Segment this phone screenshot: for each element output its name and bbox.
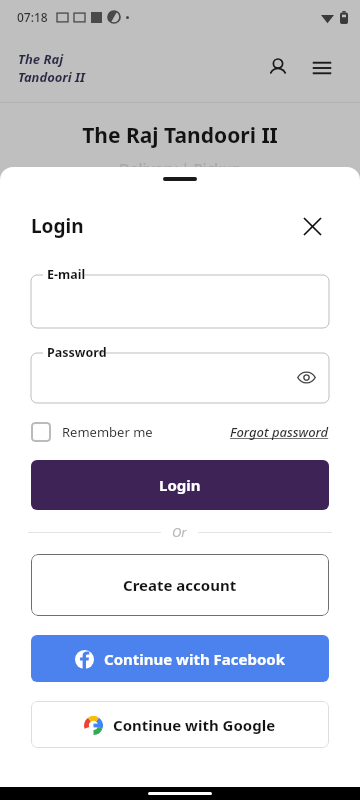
button[interactable]: Continue with Facebook — [31, 635, 329, 682]
staticText: Tandoori II — [18, 68, 86, 86]
button[interactable]: Remember me — [31, 422, 153, 442]
staticText: Login — [31, 213, 84, 239]
staticText: Create account — [123, 575, 237, 595]
staticText: Or — [172, 523, 187, 541]
staticText: Delivery | Pickup — [0, 158, 360, 178]
button[interactable]: Create account — [31, 554, 329, 616]
button[interactable]: Menu — [302, 48, 342, 88]
button[interactable]: Account — [258, 48, 298, 88]
staticText: Password — [47, 344, 107, 361]
staticText: 07:18 — [17, 9, 48, 25]
staticText: The Raj Tandoori II — [0, 121, 360, 150]
staticText: Remember me — [62, 423, 153, 441]
staticText: The Raj — [18, 50, 64, 68]
button[interactable]: Show password — [293, 364, 319, 390]
button[interactable]: Close — [295, 209, 329, 243]
staticText: Continue with Google — [113, 715, 276, 735]
staticText: Continue with Facebook — [104, 649, 286, 669]
staticText: Forgot password — [230, 423, 329, 441]
staticText: E-mail — [47, 266, 86, 283]
button[interactable]: Login — [31, 460, 329, 510]
staticText: Login — [159, 475, 201, 495]
button[interactable]: Forgot password — [230, 423, 329, 441]
button[interactable]: Continue with Google — [31, 701, 329, 748]
